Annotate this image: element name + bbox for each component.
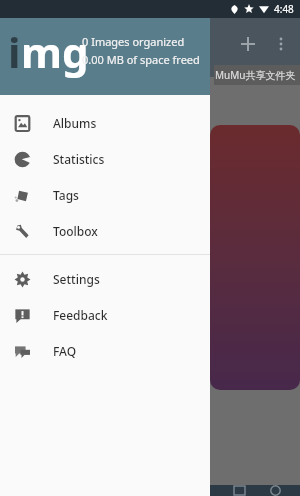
button[interactable]: Recents — [227, 485, 251, 496]
button[interactable]: Settings — [0, 261, 210, 297]
button[interactable]: Tags — [0, 177, 210, 213]
staticText: Settings — [53, 271, 100, 287]
staticText: Toolbox — [53, 223, 98, 239]
staticText: MuMu共享文件夹 — [215, 68, 296, 82]
button[interactable]: i — [0, 0, 210, 95]
staticText: 4:48 — [274, 2, 294, 16]
button[interactable]: Add — [230, 26, 266, 62]
button[interactable]: Feedback — [0, 297, 210, 333]
button[interactable]: FAQ — [0, 333, 210, 369]
button[interactable]: More options — [266, 29, 296, 59]
button[interactable]: Albums — [0, 105, 210, 141]
staticText: 0.00 MB of space freed — [82, 52, 200, 67]
button[interactable] — [210, 125, 300, 390]
staticText: FAQ — [53, 343, 77, 359]
button[interactable]: Statistics — [0, 141, 210, 177]
staticText: Statistics — [53, 151, 105, 167]
staticText: i — [8, 23, 21, 80]
staticText: 0 Images organized — [82, 34, 185, 49]
button[interactable]: Toolbox — [0, 213, 210, 249]
button[interactable]: Home — [263, 485, 287, 496]
staticText: Tags — [53, 187, 79, 203]
staticText: Feedback — [53, 307, 108, 323]
staticText: mg — [21, 23, 89, 80]
staticText: Albums — [53, 115, 97, 131]
